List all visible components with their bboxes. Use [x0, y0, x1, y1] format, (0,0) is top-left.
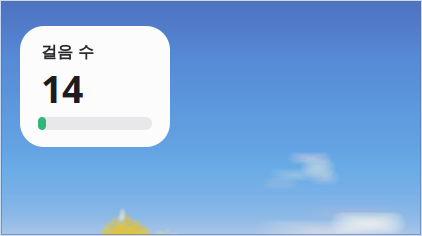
staticText: 걸음 수: [41, 42, 94, 62]
button[interactable]: 걸음 수: [20, 26, 170, 147]
staticText: 14: [41, 64, 83, 113]
